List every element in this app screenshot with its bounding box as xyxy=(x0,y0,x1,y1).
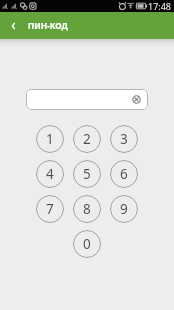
staticText: 5 xyxy=(83,165,91,183)
button[interactable]: 0 xyxy=(73,230,101,258)
button[interactable]: 2 xyxy=(73,125,101,153)
button[interactable]: Clear xyxy=(131,94,142,105)
button[interactable]: 9 xyxy=(110,195,138,223)
staticText: 17:48 xyxy=(148,0,172,12)
button[interactable]: Clear xyxy=(26,89,148,110)
button[interactable]: 6 xyxy=(110,160,138,188)
staticText: 1 xyxy=(46,130,54,148)
staticText: 6 xyxy=(120,165,128,183)
button[interactable]: 7 xyxy=(36,195,64,223)
staticText: 2 xyxy=(83,130,91,148)
staticText: 9 xyxy=(120,200,128,218)
button[interactable]: 5 xyxy=(73,160,101,188)
staticText: 4 xyxy=(46,165,54,183)
button[interactable]: Back xyxy=(0,12,26,39)
staticText: 0 xyxy=(83,235,91,253)
staticText: 3 xyxy=(120,130,128,148)
staticText: ПИН-КОД xyxy=(28,20,68,31)
staticText: 8 xyxy=(83,200,91,218)
button[interactable]: 3 xyxy=(110,125,138,153)
button[interactable]: 4 xyxy=(36,160,64,188)
staticText: 7 xyxy=(46,200,54,218)
button[interactable]: 1 xyxy=(36,125,64,153)
button[interactable]: 8 xyxy=(73,195,101,223)
